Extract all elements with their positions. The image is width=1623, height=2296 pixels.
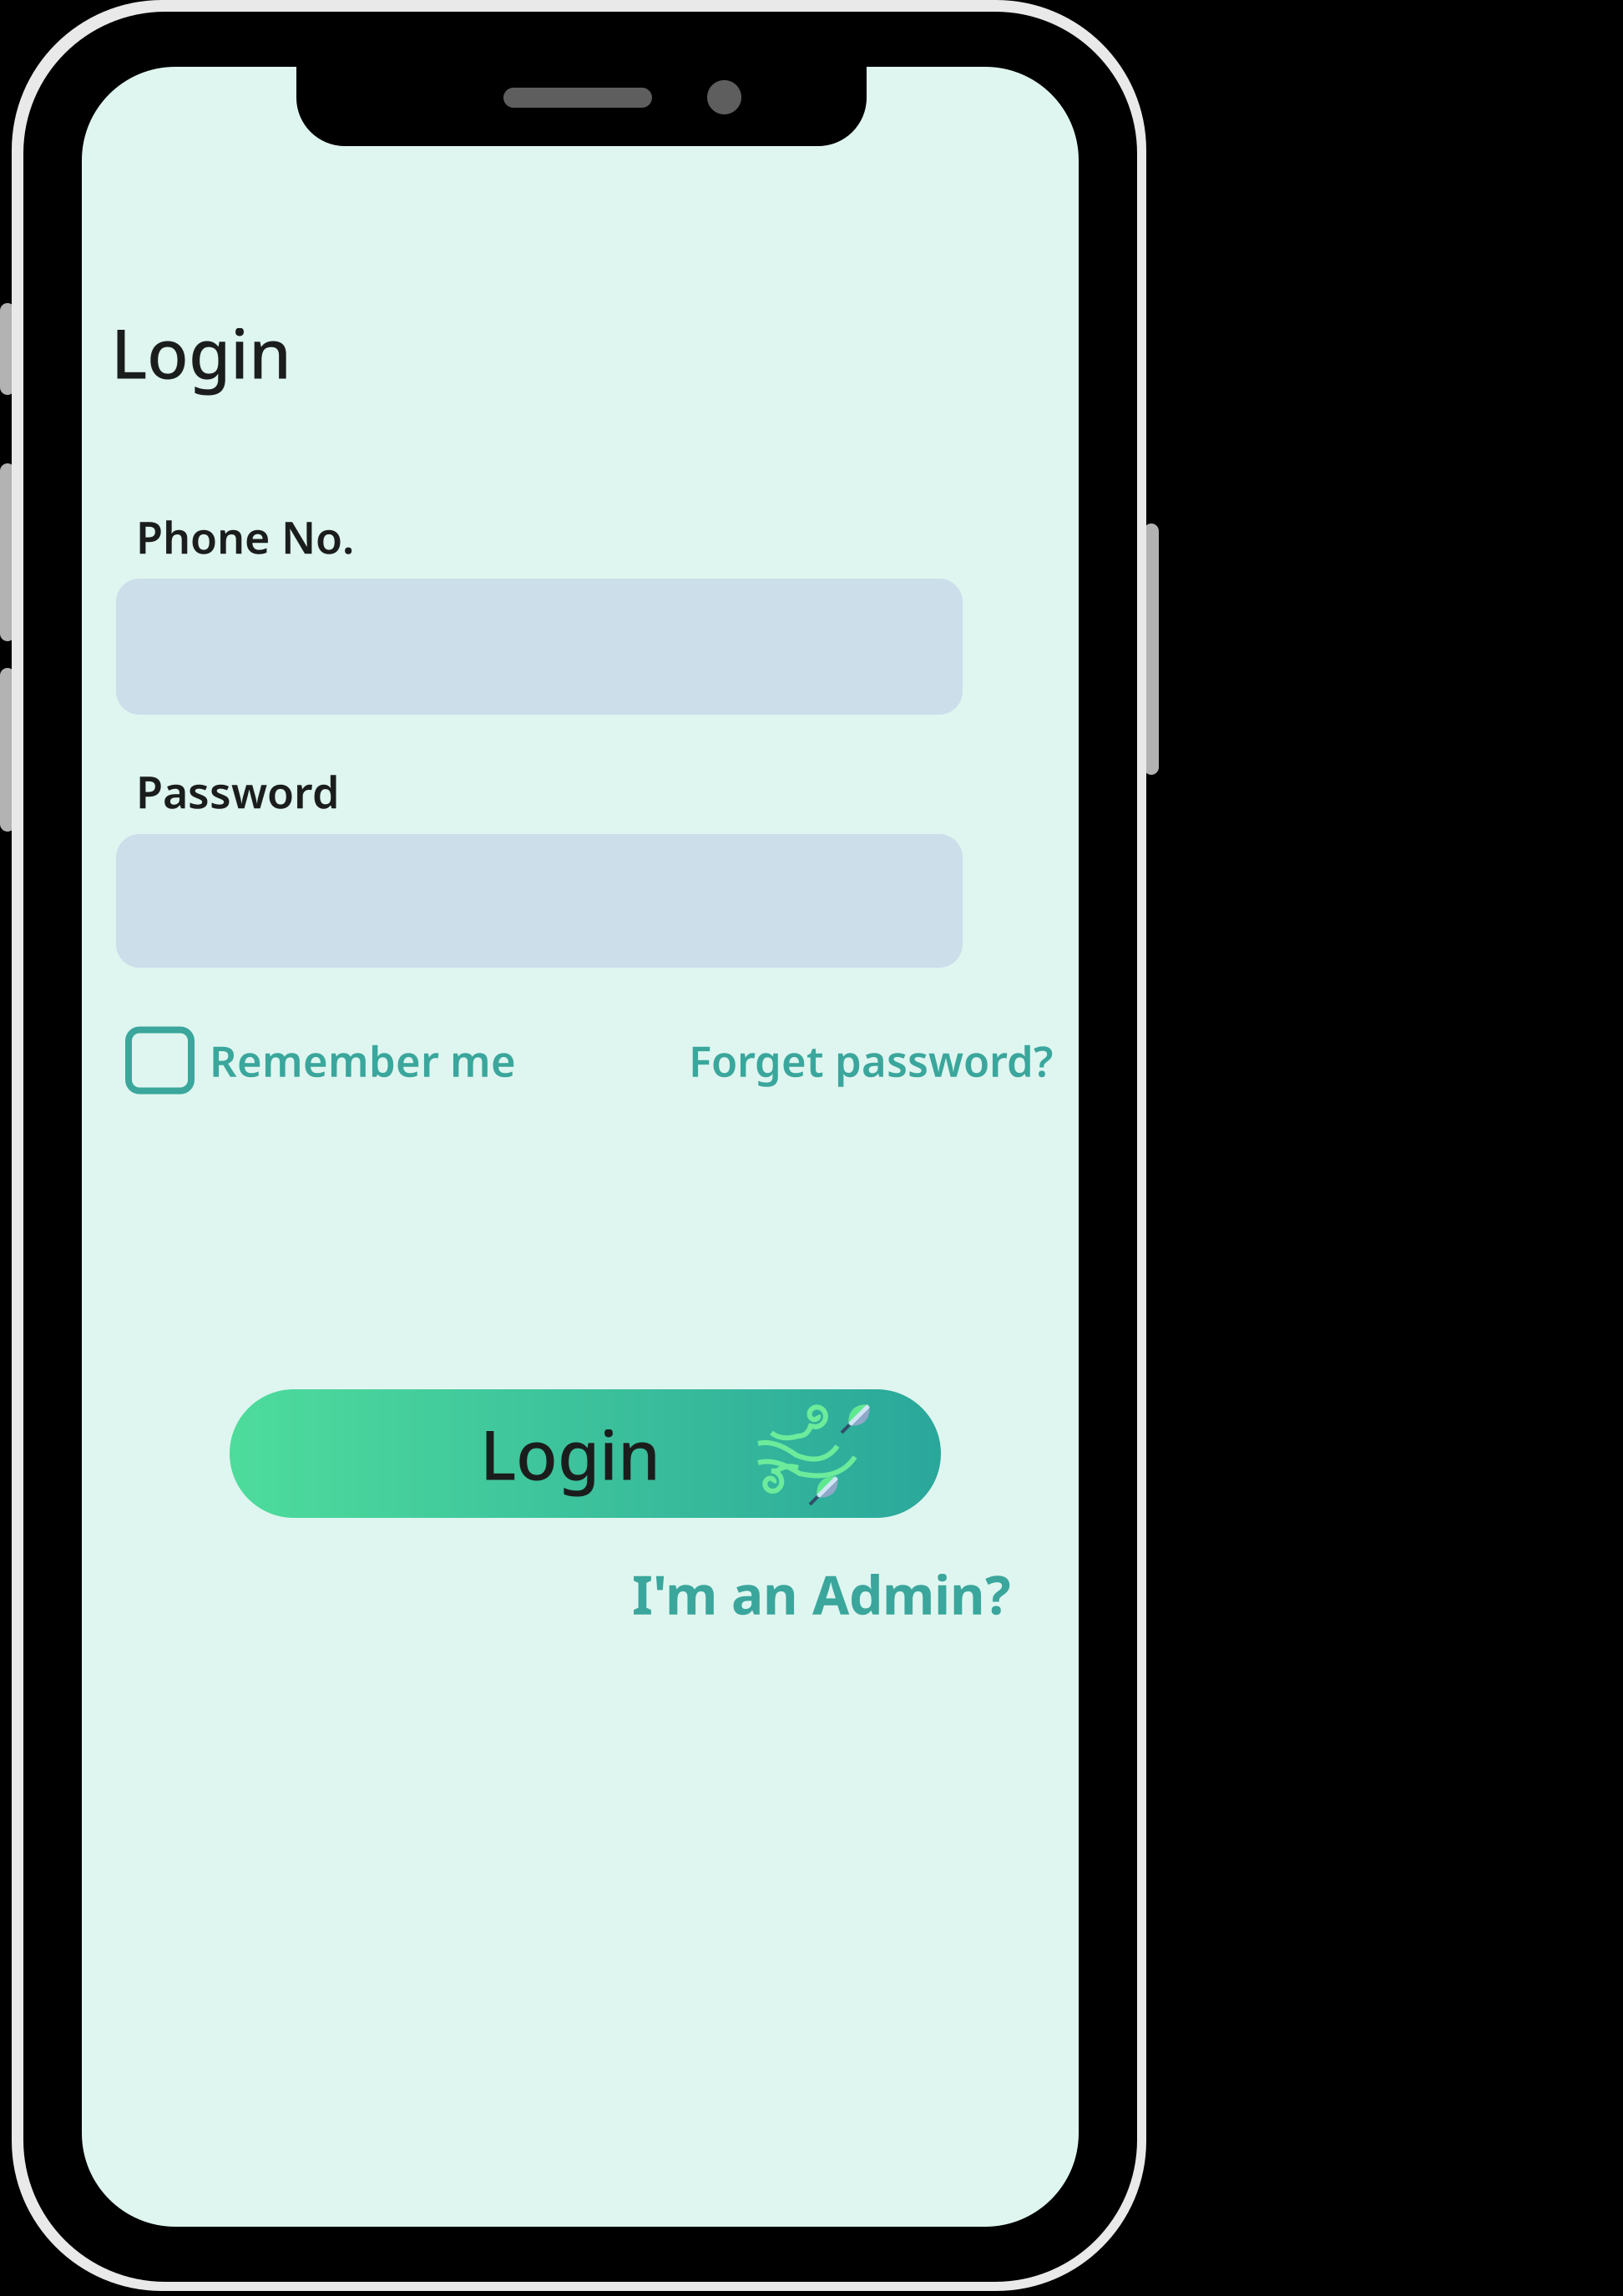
staticText: Remember me	[210, 1032, 516, 1088]
staticText: Phone No.	[136, 508, 354, 566]
staticText: I'm an Admin?	[632, 1558, 1011, 1629]
button[interactable]: Login	[230, 1389, 941, 1518]
staticText: Forget password?	[689, 1032, 1053, 1088]
button[interactable]: Remember me	[129, 1019, 516, 1102]
staticText: Password	[136, 763, 340, 820]
staticText: Login	[480, 1408, 660, 1499]
button[interactable]: I'm an Admin?	[632, 1558, 1011, 1629]
button[interactable]: Forget password?	[689, 1019, 1053, 1102]
staticText: Login	[111, 307, 291, 397]
